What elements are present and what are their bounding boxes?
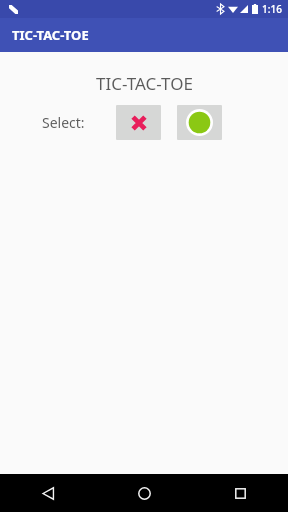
staticText: 1:16	[262, 2, 282, 16]
button[interactable]: Select X	[116, 105, 161, 140]
button[interactable]: Back	[0, 474, 96, 512]
staticText: TIC-TAC-TOE	[12, 26, 89, 44]
staticText: Select:	[42, 113, 85, 132]
staticText: TIC-TAC-TOE	[96, 72, 193, 95]
button[interactable]: Recent apps	[192, 474, 288, 512]
button[interactable]: Select O	[177, 105, 222, 140]
button[interactable]: Home	[96, 474, 192, 512]
